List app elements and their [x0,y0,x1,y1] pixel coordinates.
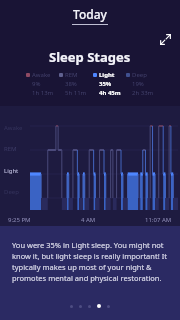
staticText: Light [4,167,19,175]
staticText: 4h 45m [99,89,121,97]
button[interactable]: REM [59,71,87,97]
staticText: 19% [132,80,144,88]
staticText: 11:07 AM [145,216,172,224]
staticText: 2h 33m [132,89,154,97]
button[interactable] [79,305,82,308]
staticText: 9:25 PM [8,216,31,224]
staticText: REM [4,145,17,153]
staticText: 1h 13m [32,89,54,97]
staticText: Deep [4,188,19,196]
staticText: Awake [32,71,51,79]
button[interactable]: Deep [126,71,154,97]
button[interactable] [88,305,91,308]
button[interactable]: Expand chart to full screen [157,31,173,47]
staticText: 38% [65,80,77,88]
button[interactable]: Awake [26,71,54,97]
staticText: REM [65,71,78,79]
staticText: 4 AM [81,216,96,224]
button[interactable]: Awake [0,106,180,214]
staticText: 9% [32,80,41,88]
staticText: Light [99,71,115,79]
staticText: You were 35% in Light sleep. You might n… [12,240,168,283]
staticText: 35% [99,80,112,88]
staticText: Deep [132,71,147,79]
button[interactable] [107,305,110,308]
button[interactable]: Light [93,71,121,97]
staticText: 5h 11m [65,89,87,97]
button[interactable] [97,304,101,308]
button[interactable]: Today [66,4,114,27]
staticText: Today [73,6,107,22]
button[interactable] [70,305,73,308]
staticText: Awake [4,124,23,132]
staticText: Sleep Stages [49,48,131,66]
